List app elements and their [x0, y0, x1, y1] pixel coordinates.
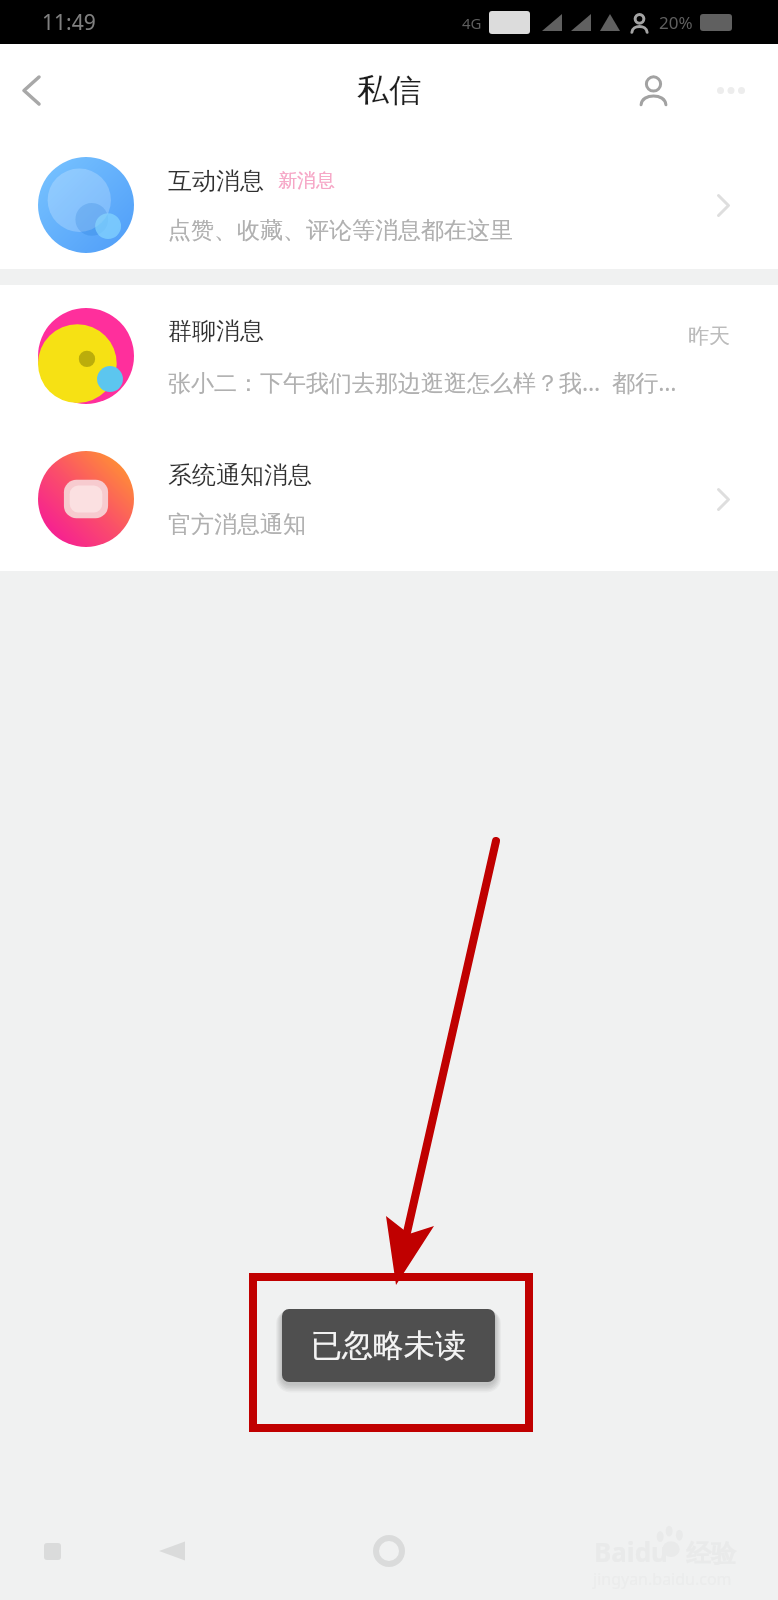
button[interactable]: 群聊消息	[0, 285, 778, 427]
button[interactable]: Back	[5, 64, 57, 116]
button[interactable]: Recent apps	[26, 1525, 78, 1577]
button[interactable]: More options	[705, 64, 757, 116]
staticText: 11:49	[42, 8, 96, 37]
staticText: 昨天	[688, 323, 730, 349]
staticText: 群聊消息	[168, 316, 264, 346]
button[interactable]: Contacts	[627, 64, 679, 116]
staticText: 经验	[686, 1538, 736, 1569]
staticText: 私信	[357, 70, 421, 110]
staticText: 已忽略未读	[311, 1326, 466, 1365]
button[interactable]: Back	[146, 1525, 198, 1577]
staticText: 系统通知消息	[168, 460, 312, 490]
staticText: 新消息	[278, 169, 335, 193]
button[interactable]: 系统通知消息	[0, 427, 778, 571]
staticText: 点赞、收藏、评论等消息都在这里	[168, 216, 513, 245]
staticText: Baidu	[594, 1534, 668, 1569]
button[interactable]: 已忽略未读	[282, 1309, 495, 1382]
staticText: 4G	[462, 13, 482, 33]
staticText: 20%	[659, 11, 693, 34]
staticText: 官方消息通知	[168, 510, 306, 539]
staticText: 张小二：下午我们去那边逛逛怎么样？我… 都行…	[168, 366, 677, 397]
button[interactable]: 互动消息	[0, 141, 778, 269]
button[interactable]: Home	[361, 1523, 417, 1579]
staticText: 互动消息	[168, 166, 264, 196]
